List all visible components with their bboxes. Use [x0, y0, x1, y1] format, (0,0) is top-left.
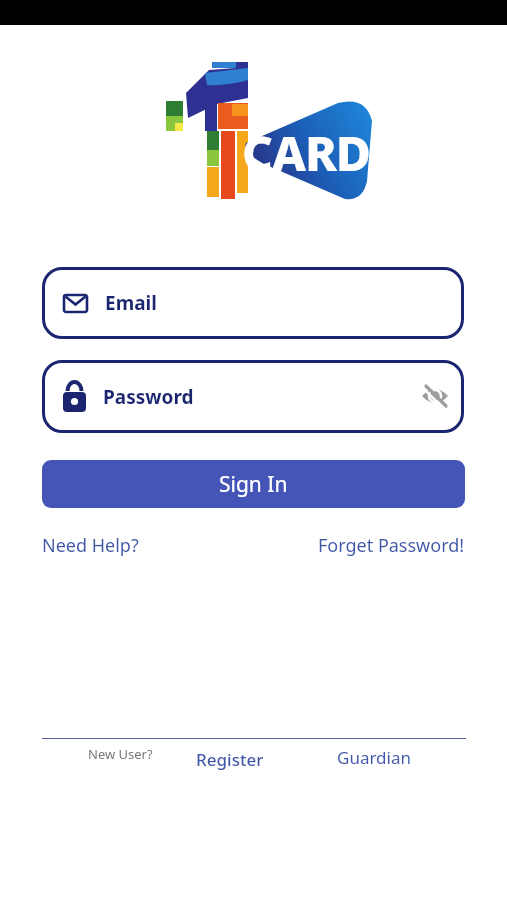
button[interactable]: Guardian — [337, 746, 411, 769]
button[interactable]: Sign In — [42, 460, 465, 508]
staticText: Register — [196, 748, 264, 771]
button[interactable]: Email — [42, 267, 464, 339]
staticText: CARD — [242, 120, 371, 185]
staticText: Guardian — [337, 746, 411, 769]
staticText: Forget Password! — [318, 533, 465, 558]
button[interactable]: Password — [42, 360, 464, 433]
button[interactable]: Forget Password! — [318, 533, 465, 558]
button[interactable]: Register — [196, 748, 264, 771]
staticText: Email — [105, 290, 157, 316]
button[interactable]: Need Help? — [42, 533, 139, 558]
staticText: Sign In — [219, 470, 288, 499]
staticText: New User? — [88, 745, 153, 763]
staticText: Password — [103, 384, 194, 410]
staticText: Need Help? — [42, 533, 139, 558]
button[interactable] — [420, 382, 450, 412]
